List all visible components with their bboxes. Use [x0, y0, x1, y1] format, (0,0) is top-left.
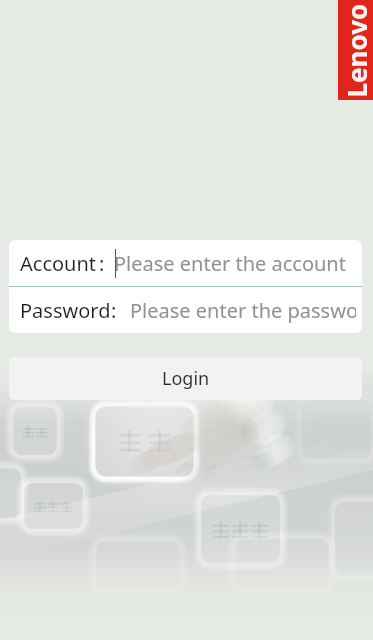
staticText: : — [99, 250, 105, 277]
staticText: : — [111, 297, 117, 324]
button[interactable]: Account — [9, 240, 362, 286]
other: Lenovo — [338, 0, 373, 100]
staticText: Password — [20, 297, 111, 324]
staticText: Lenovo — [338, 3, 373, 97]
staticText: Please enter the account — [116, 250, 346, 277]
button[interactable]: Password — [9, 287, 362, 333]
staticText: Login — [162, 366, 210, 391]
button[interactable]: Login — [9, 357, 362, 400]
staticText: Account — [20, 250, 97, 277]
staticText: Please enter the password — [130, 297, 356, 324]
